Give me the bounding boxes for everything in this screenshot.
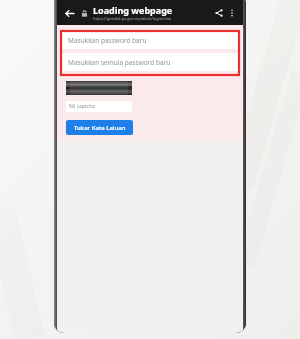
staticText: Loading webpage [93, 4, 173, 16]
button[interactable]: Nil captcha [66, 101, 132, 112]
staticText: https://gawbid.ps.gov.my/abist/login/cha… [93, 16, 172, 21]
staticText: Tukar Kata Laluan [74, 124, 126, 132]
button[interactable]: Tukar Kata Laluan [66, 120, 133, 135]
staticText: Masukkan semula password baru [68, 58, 171, 67]
button[interactable]: Masukkan password baru [61, 31, 239, 49]
button[interactable]: Back [62, 6, 76, 20]
staticText: Masukkan password baru [68, 36, 147, 45]
button[interactable]: Share [212, 6, 226, 20]
button[interactable]: More options [226, 7, 238, 19]
staticText: Nil captcha [69, 103, 96, 110]
button[interactable]: Masukkan semula password baru [61, 53, 239, 71]
